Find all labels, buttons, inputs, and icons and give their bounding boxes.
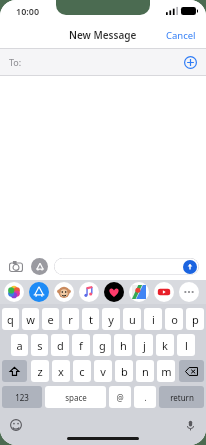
staticText: r (68, 312, 73, 327)
button[interactable]: w (22, 308, 39, 330)
button[interactable]: space (45, 386, 106, 408)
staticText: o (171, 312, 178, 327)
button[interactable]: l (177, 334, 195, 356)
staticText: z (37, 364, 43, 379)
button[interactable]: App (104, 282, 124, 302)
button[interactable]: b (115, 360, 133, 382)
button[interactable]: x (52, 360, 70, 382)
staticText: h (120, 338, 127, 353)
button[interactable]: q (2, 308, 19, 330)
staticText: . (144, 392, 147, 403)
button[interactable]: App (129, 282, 149, 302)
button[interactable]: f (72, 334, 90, 356)
button[interactable]: h (114, 334, 132, 356)
staticText: c (79, 364, 85, 379)
button[interactable]: y (102, 308, 120, 330)
staticText: x (58, 364, 64, 379)
staticText: To: (9, 56, 22, 68)
button[interactable]: a (11, 334, 28, 356)
button[interactable]: return (159, 386, 204, 408)
button[interactable]: k (156, 334, 174, 356)
staticText: n (142, 364, 149, 379)
button[interactable]: 123 (2, 386, 42, 408)
button[interactable]: . (134, 386, 156, 408)
button[interactable]: Send (183, 260, 197, 274)
button[interactable]: c (73, 360, 91, 382)
button[interactable]: z (31, 360, 49, 382)
button[interactable]: @ (109, 386, 131, 408)
staticText: p (192, 312, 199, 327)
button[interactable]: o (165, 308, 183, 330)
staticText: w (26, 312, 35, 327)
button[interactable]: i (144, 308, 162, 330)
staticText: Cancel (166, 29, 196, 42)
button[interactable]: Shift (2, 360, 27, 382)
button[interactable]: g (93, 334, 111, 356)
button[interactable]: e (42, 308, 59, 330)
button[interactable]: Cancel (156, 25, 206, 46)
staticText: t (89, 312, 93, 327)
button[interactable]: m (157, 360, 175, 382)
button[interactable]: Camera (7, 257, 25, 275)
staticText: e (47, 312, 54, 327)
button[interactable]: App (154, 282, 174, 302)
staticText: space (65, 392, 87, 403)
staticText: @ (116, 392, 124, 403)
staticText: b (121, 364, 128, 379)
button[interactable]: Add contact (181, 53, 199, 71)
staticText: a (16, 338, 23, 353)
staticText: return (170, 392, 194, 403)
button[interactable]: To: (0, 49, 206, 75)
button[interactable]: App (54, 282, 74, 302)
button[interactable]: App (179, 282, 199, 302)
staticText: d (57, 338, 64, 353)
staticText: s (37, 338, 43, 353)
button[interactable]: j (135, 334, 153, 356)
button[interactable]: App (29, 282, 49, 302)
staticText: 10:00 (16, 5, 40, 17)
staticText: y (108, 312, 114, 327)
button[interactable]: App (79, 282, 99, 302)
button[interactable]: Dictate (182, 417, 198, 433)
staticText: u (129, 312, 136, 327)
staticText: q (7, 312, 14, 327)
staticText: v (100, 364, 106, 379)
button[interactable]: v (94, 360, 112, 382)
staticText: New Message (69, 28, 137, 42)
staticText: k (162, 338, 168, 353)
staticText: m (161, 364, 172, 379)
button[interactable]: App (4, 282, 24, 302)
button[interactable]: u (123, 308, 141, 330)
staticText: l (185, 338, 188, 353)
button[interactable]: r (62, 308, 79, 330)
button[interactable]: t (82, 308, 99, 330)
staticText: 123 (15, 392, 29, 403)
button[interactable]: n (136, 360, 154, 382)
staticText: g (99, 338, 106, 353)
button[interactable]: Send (54, 258, 199, 275)
button[interactable]: App Store (31, 258, 48, 275)
button[interactable]: d (51, 334, 69, 356)
button[interactable]: Backspace (179, 360, 204, 382)
staticText: f (79, 338, 83, 353)
staticText: j (143, 338, 146, 353)
button[interactable]: Emoji (8, 417, 24, 433)
button[interactable]: p (186, 308, 204, 330)
button[interactable]: s (31, 334, 48, 356)
staticText: i (152, 312, 155, 327)
